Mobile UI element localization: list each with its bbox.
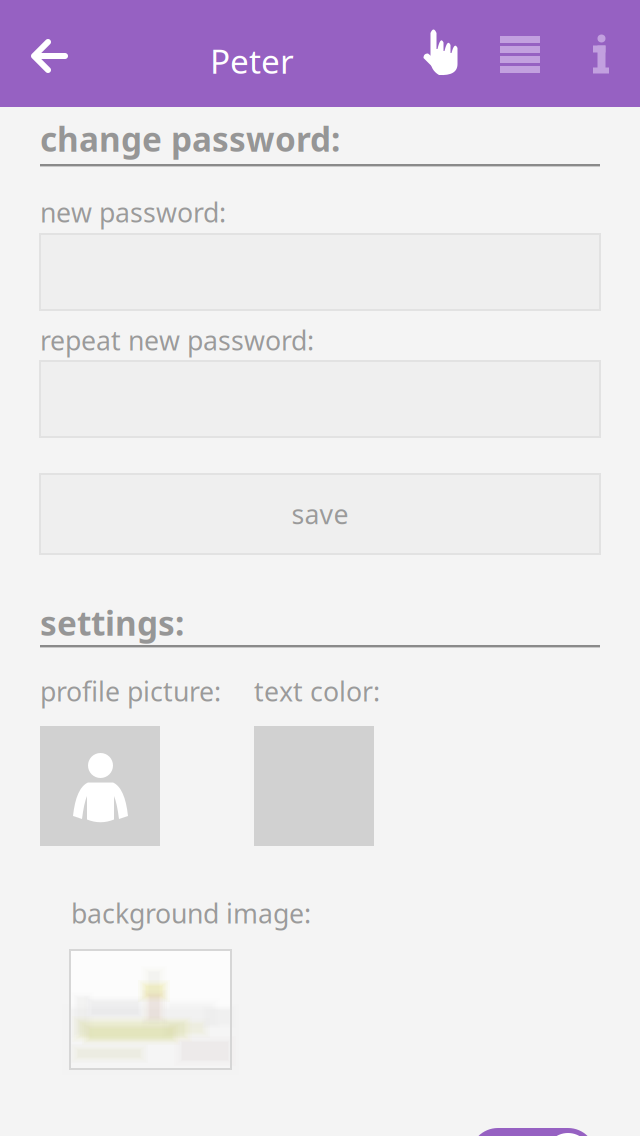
button[interactable]: Touch mode <box>418 28 462 80</box>
staticText: new password: <box>40 194 226 230</box>
staticText: settings: <box>40 600 184 645</box>
staticText: profile picture: <box>40 673 221 709</box>
button[interactable]: Toggle <box>470 1128 596 1136</box>
staticText: save <box>291 496 348 532</box>
button[interactable]: Profile picture <box>40 726 160 846</box>
staticText: change password: <box>40 116 340 161</box>
button[interactable]: Info <box>593 34 609 74</box>
staticText: repeat new password: <box>40 322 314 358</box>
button[interactable]: Menu <box>500 35 540 74</box>
staticText: text color: <box>254 673 380 709</box>
staticText: Peter <box>210 38 294 83</box>
button[interactable]: Back <box>31 39 68 73</box>
button[interactable]: Background image <box>70 950 231 1069</box>
staticText: background image: <box>71 895 311 931</box>
button[interactable]: save <box>40 474 600 554</box>
